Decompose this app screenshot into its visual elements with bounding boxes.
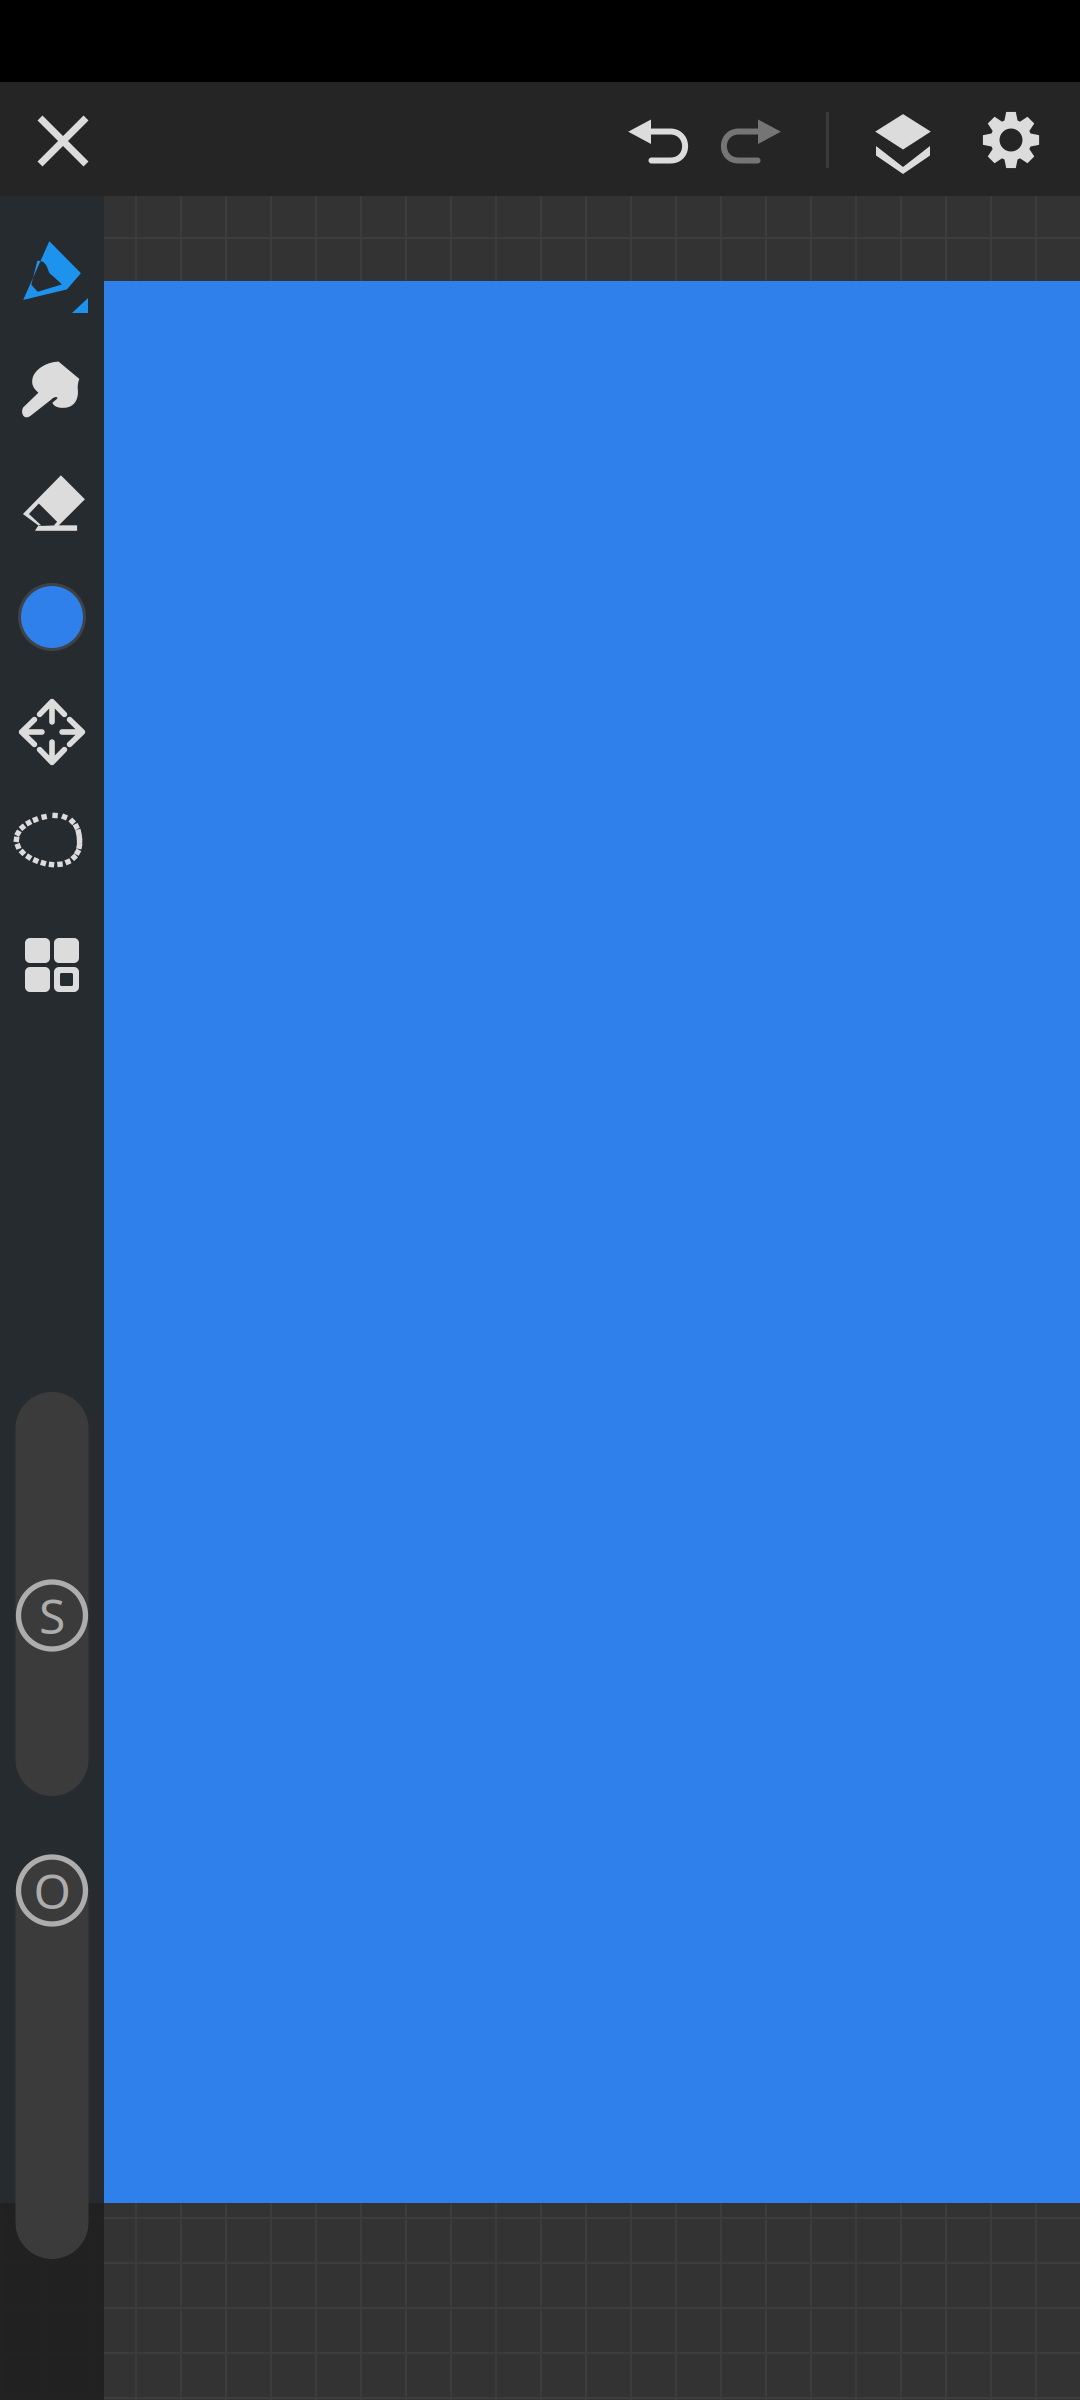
button[interactable]: Brush xyxy=(0,219,104,323)
button[interactable]: Colour xyxy=(0,565,104,669)
button[interactable]: Eraser xyxy=(0,451,104,555)
button[interactable]: Select xyxy=(0,787,104,891)
staticText: O xyxy=(33,1859,70,1922)
button[interactable]: Layers xyxy=(851,92,955,196)
button[interactable]: Brush size xyxy=(15,1392,88,1796)
button[interactable]: Close xyxy=(11,89,115,193)
button[interactable]: Settings xyxy=(959,88,1063,192)
button[interactable]: Opacity xyxy=(15,1856,88,2259)
button[interactable]: Move xyxy=(0,680,104,784)
button[interactable]: More tools xyxy=(0,913,104,1017)
button[interactable]: Smudge xyxy=(0,338,104,442)
button[interactable]: Redo xyxy=(701,95,805,199)
button[interactable]: Undo xyxy=(604,95,708,199)
staticText: S xyxy=(39,1584,65,1647)
